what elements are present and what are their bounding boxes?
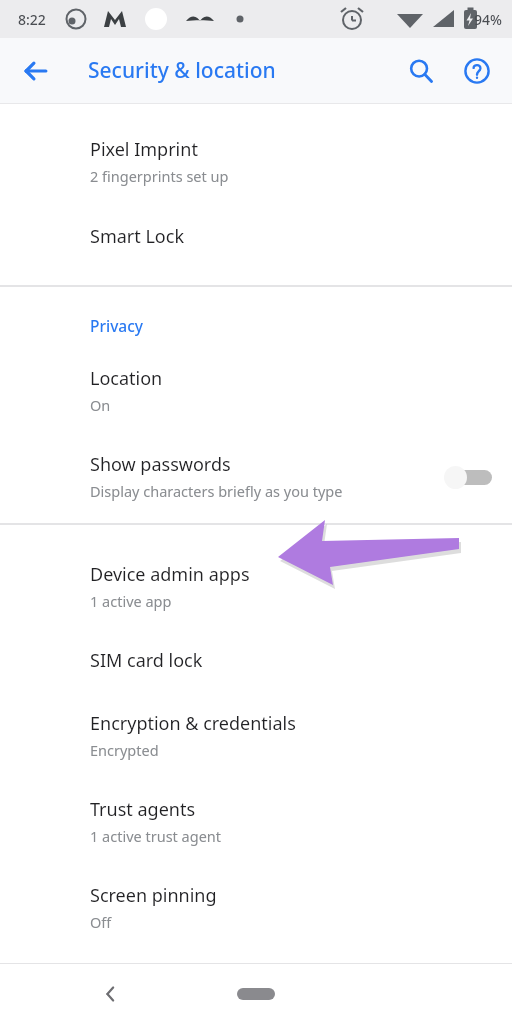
button[interactable]: Trust agents — [0, 797, 512, 846]
staticText: Security & location — [88, 56, 276, 85]
button[interactable]: Encryption & credentials — [0, 711, 512, 760]
button[interactable]: Help — [454, 48, 500, 94]
staticText: 8:22 — [18, 10, 46, 29]
staticText: 1 active trust agent — [90, 826, 222, 846]
button[interactable]: Show passwords toggle — [438, 461, 494, 493]
button[interactable]: Back — [88, 971, 134, 1017]
button[interactable]: Privacy — [0, 315, 512, 336]
staticText: Device admin apps — [90, 562, 250, 587]
staticText: Privacy — [90, 315, 144, 336]
button[interactable]: Location — [0, 366, 512, 415]
button[interactable]: Search — [398, 48, 444, 94]
staticText: Off — [90, 912, 112, 932]
staticText: 1 active app — [90, 591, 172, 611]
button[interactable]: Screen pinning — [0, 883, 512, 932]
staticText: Smart Lock — [90, 224, 184, 249]
button[interactable]: Back — [12, 47, 60, 95]
staticText: Trust agents — [90, 797, 196, 822]
button[interactable]: SIM card lock — [0, 648, 512, 673]
staticText: 94% — [474, 10, 502, 29]
staticText: Screen pinning — [90, 883, 217, 908]
button[interactable]: Show passwords — [0, 452, 512, 501]
staticText: Encryption & credentials — [90, 711, 296, 736]
staticText: Encrypted — [90, 740, 159, 760]
staticText: Location — [90, 366, 163, 391]
button[interactable]: Smart Lock — [0, 224, 512, 249]
staticText: Display characters briefly as you type — [90, 481, 343, 501]
staticText: 2 fingerprints set up — [90, 166, 229, 186]
button[interactable]: Home — [228, 983, 284, 1005]
button[interactable]: Pixel Imprint — [0, 137, 512, 186]
button[interactable]: Device admin apps — [0, 562, 512, 611]
staticText: SIM card lock — [90, 648, 203, 673]
staticText: Show passwords — [90, 452, 231, 477]
staticText: Pixel Imprint — [90, 137, 198, 162]
staticText: On — [90, 395, 111, 415]
